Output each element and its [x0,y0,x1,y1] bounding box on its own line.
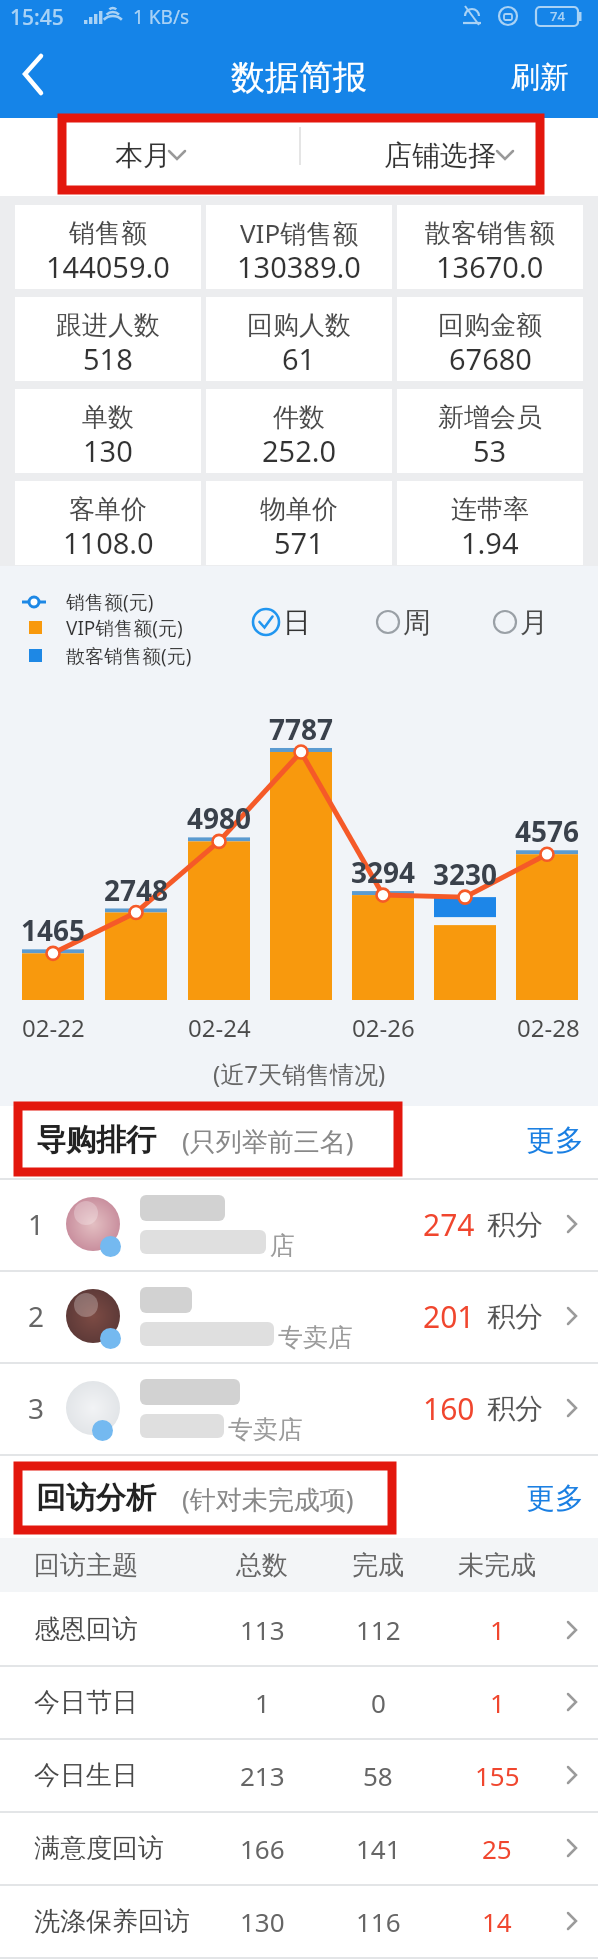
staticText: 3 [28,1389,45,1427]
staticText: 销售额 [69,217,147,250]
staticText: 113 [240,1612,285,1647]
staticText: (针对未完成项) [182,1481,354,1517]
button[interactable] [15,205,201,289]
staticText: 67680 [449,339,532,378]
staticText: 积分 [487,1299,543,1334]
staticText: 0 [371,1685,386,1720]
staticText: 积分 [487,1391,543,1426]
staticText: 单数 [82,401,134,434]
staticText: 更多 [526,1480,584,1517]
button[interactable] [206,389,392,473]
staticText: 1 KB/s [133,4,190,30]
button[interactable] [72,127,300,181]
staticText: 02-22 [22,1011,85,1044]
staticText: (只列举前三名) [182,1123,354,1159]
staticText: 新增会员 [438,401,542,434]
button[interactable]: 刷新 [505,57,575,97]
staticText: 252.0 [262,431,337,470]
staticText: VIP销售额(元) [66,615,183,641]
button[interactable] [0,1811,598,1884]
button[interactable] [397,481,583,565]
button[interactable] [487,600,557,644]
button[interactable] [206,481,392,565]
staticText: 130389.0 [237,247,361,286]
staticText: 144059.0 [46,247,170,286]
staticText: 201 [423,1296,475,1337]
button[interactable] [245,600,315,644]
staticText: 刷新 [511,59,569,96]
staticText: 53 [473,431,507,470]
staticText: 今日生日 [34,1759,138,1792]
staticText: 1108.0 [63,523,154,562]
button[interactable]: 更多 [520,1476,590,1520]
staticText: 116 [356,1904,401,1939]
staticText: 销售额(元) [66,589,154,615]
button[interactable] [0,1270,598,1362]
staticText: 导购排行 [36,1121,156,1159]
button[interactable] [397,389,583,473]
button[interactable] [0,1884,598,1957]
button[interactable] [10,48,70,106]
staticText: 散客销售额(元) [66,643,192,669]
button[interactable] [15,389,201,473]
staticText: 完成 [352,1549,404,1582]
staticText: 7787 [269,710,334,748]
staticText: 1.94 [461,523,519,562]
button[interactable]: 更多 [520,1118,590,1162]
staticText: 160 [423,1388,475,1429]
staticText: 周 [403,605,431,640]
staticText: 散客销售额 [425,217,555,250]
staticText: 155 [475,1758,520,1793]
button[interactable] [397,205,583,289]
staticText: 2 [28,1297,45,1335]
staticText: 回购人数 [247,309,351,342]
staticText: VIP销售额 [240,215,359,251]
staticText: 客单价 [69,493,147,526]
staticText: 回访分析 [36,1479,156,1517]
button[interactable] [15,297,201,381]
staticText: 4576 [515,812,580,850]
button[interactable] [0,1592,598,1665]
staticText: 3294 [351,853,416,891]
staticText: 日 [283,605,311,640]
button[interactable] [15,481,201,565]
staticText: 回购金额 [438,309,542,342]
staticText: 14 [482,1904,512,1939]
staticText: 本月 [115,138,171,173]
button[interactable] [302,127,530,181]
staticText: 518 [83,339,133,378]
staticText: 166 [240,1831,285,1866]
button[interactable] [0,1178,598,1270]
staticText: 1 [255,1685,270,1720]
staticText: 1 [28,1205,45,1243]
staticText: 件数 [273,401,325,434]
staticText: 130 [240,1904,285,1939]
button[interactable] [206,205,392,289]
button[interactable] [206,297,392,381]
staticText: 回访主题 [34,1549,138,1582]
staticText: 更多 [526,1122,584,1159]
staticText: 74 [550,7,565,25]
staticText: 总数 [236,1549,288,1582]
staticText: 数据简报 [231,56,367,99]
staticText: 58 [363,1758,393,1793]
staticText: 02-28 [517,1011,580,1044]
staticText: 1 [490,1612,505,1647]
staticText: 今日节日 [34,1686,138,1719]
staticText: 112 [356,1612,401,1647]
staticText: 感恩回访 [34,1613,138,1646]
staticText: 02-26 [352,1011,415,1044]
button[interactable] [370,600,440,644]
button[interactable] [397,297,583,381]
staticText: 15:45 [10,3,64,32]
staticText: 4980 [187,799,252,837]
button[interactable] [0,1362,598,1454]
button[interactable] [0,1665,598,1738]
staticText: 141 [356,1831,401,1866]
staticText: 3230 [433,855,498,893]
staticText: 月 [520,605,548,640]
staticText: 13670.0 [436,247,544,286]
staticText: 130 [83,431,133,470]
staticText: 跟进人数 [56,309,160,342]
button[interactable] [0,1738,598,1811]
